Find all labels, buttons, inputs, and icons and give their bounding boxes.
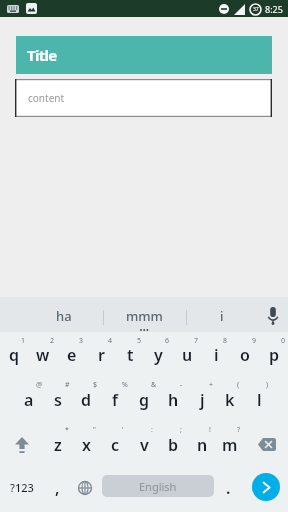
button[interactable]: h [159, 377, 187, 422]
button[interactable]: e [58, 332, 86, 377]
staticText: x [82, 434, 91, 456]
staticText: * [65, 425, 69, 435]
button[interactable]: . [214, 465, 242, 510]
staticText: & [151, 380, 157, 390]
button[interactable]: ha [25, 300, 103, 332]
staticText: 9 [252, 336, 257, 346]
button[interactable] [71, 465, 99, 510]
button[interactable]: v [130, 422, 158, 467]
button[interactable]: q [0, 332, 28, 377]
staticText: k [225, 389, 235, 411]
staticText: d [81, 389, 92, 411]
button[interactable]: k [216, 377, 244, 422]
staticText: s [54, 389, 62, 411]
button[interactable]: mmm [103, 300, 186, 332]
staticText: l [257, 389, 262, 411]
button[interactable]: r [87, 332, 115, 377]
button[interactable]: i [186, 300, 258, 332]
staticText: content [28, 91, 65, 105]
staticText: m [222, 434, 238, 456]
staticText: r [98, 344, 105, 366]
staticText: n [197, 434, 208, 456]
button[interactable]: English [102, 475, 214, 497]
button[interactable]: y [144, 332, 172, 377]
staticText: . [226, 477, 231, 499]
button[interactable]: , [43, 465, 71, 510]
staticText: mmm [126, 307, 163, 325]
button[interactable] [0, 422, 43, 467]
staticText: ?123 [10, 480, 34, 495]
button[interactable]: b [159, 422, 187, 467]
button[interactable]: c [101, 422, 129, 467]
button[interactable]: j [188, 377, 216, 422]
staticText: ? [237, 425, 241, 435]
staticText: h [168, 389, 179, 411]
staticText: # [65, 380, 70, 390]
button[interactable]: Title [16, 36, 272, 74]
staticText: 7 [194, 336, 199, 346]
staticText: " [93, 425, 96, 435]
button[interactable]: f [101, 377, 129, 422]
staticText: f [112, 389, 118, 411]
staticText: 4 [108, 336, 113, 346]
staticText: - [180, 380, 183, 390]
staticText: j [200, 389, 205, 411]
staticText: ) [266, 380, 269, 390]
button[interactable]: s [44, 377, 72, 422]
button[interactable]: m [216, 422, 244, 467]
staticText: : [151, 425, 153, 435]
staticText: p [269, 344, 280, 366]
button[interactable]: x [72, 422, 100, 467]
button[interactable]: content [15, 79, 272, 117]
button[interactable] [245, 422, 288, 467]
button[interactable]: l [245, 377, 273, 422]
button[interactable]: n [188, 422, 216, 467]
staticText: 1 [21, 336, 26, 346]
staticText: ( [237, 380, 240, 390]
staticText: English [139, 479, 177, 494]
staticText: y [154, 344, 163, 366]
staticText: 2 [50, 336, 55, 346]
staticText: ! [209, 425, 211, 435]
button[interactable] [252, 473, 280, 501]
staticText: z [54, 434, 62, 456]
staticText: 3 [79, 336, 84, 346]
staticText: v [140, 434, 149, 456]
staticText: a [24, 389, 34, 411]
button[interactable]: z [44, 422, 72, 467]
button[interactable]: ?123 [0, 465, 43, 510]
staticText: t [127, 344, 134, 366]
staticText: ' [122, 425, 124, 435]
staticText: 8:25 [265, 3, 283, 15]
staticText: ha [56, 307, 72, 325]
staticText: i [214, 344, 219, 366]
staticText: 5 [137, 336, 142, 346]
staticText: , [55, 477, 60, 499]
staticText: ; [180, 425, 182, 435]
button[interactable]: g [130, 377, 158, 422]
button[interactable]: p [260, 332, 288, 377]
staticText: 8 [223, 336, 228, 346]
staticText: o [240, 344, 250, 366]
button[interactable]: d [72, 377, 100, 422]
staticText: e [67, 344, 77, 366]
staticText: 37 [253, 6, 259, 13]
staticText: w [36, 344, 50, 366]
staticText: 6 [165, 336, 170, 346]
staticText: c [111, 434, 120, 456]
button[interactable]: w [29, 332, 57, 377]
staticText: % [122, 380, 128, 390]
button[interactable]: i [202, 332, 230, 377]
button[interactable]: u [173, 332, 201, 377]
button[interactable]: o [231, 332, 259, 377]
staticText: i [220, 307, 224, 325]
staticText: 0 [281, 336, 286, 346]
button[interactable]: a [15, 377, 43, 422]
staticText: q [9, 344, 20, 366]
staticText: Title [27, 45, 57, 65]
button[interactable] [258, 300, 288, 332]
staticText: b [168, 434, 179, 456]
staticText: u [182, 344, 193, 366]
button[interactable]: t [116, 332, 144, 377]
staticText: + [209, 380, 214, 390]
